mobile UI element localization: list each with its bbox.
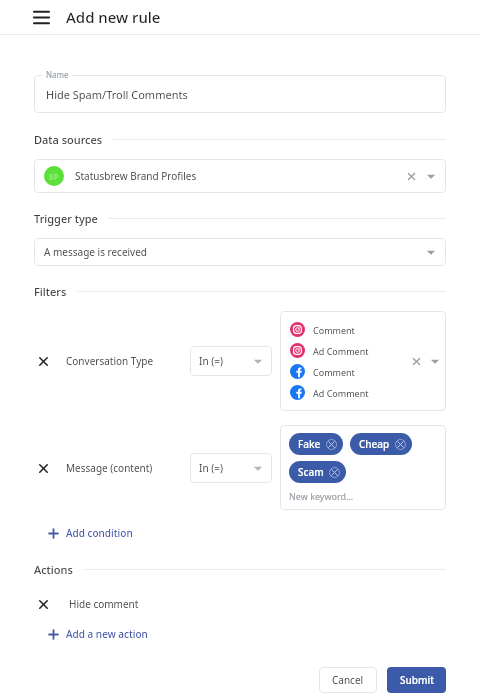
staticText: Hide Spam/Troll Comments (46, 87, 188, 102)
staticText: Data sources (34, 132, 103, 147)
staticText: Message (content) (66, 461, 153, 475)
staticText: Add a new action (66, 627, 148, 641)
button[interactable]: Add condition (34, 524, 139, 542)
staticText: Trigger type (34, 211, 98, 226)
button[interactable]: Remove filter Conversation Type (34, 352, 52, 370)
staticText: Hide comment (69, 597, 139, 611)
button[interactable]: Menu (30, 6, 52, 28)
button[interactable]: Fake (289, 433, 343, 455)
button[interactable]: SP (34, 159, 446, 193)
button[interactable]: Remove filter Message content (34, 459, 52, 477)
button[interactable]: Clear values (409, 354, 423, 368)
staticText: Add new rule (66, 7, 161, 27)
staticText: Actions (34, 562, 73, 577)
staticText: Cancel (332, 673, 364, 687)
button[interactable]: Cancel (319, 667, 377, 693)
staticText: Ad Comment (313, 387, 369, 399)
button[interactable]: Scam (289, 461, 346, 483)
button[interactable]: Clear data source (404, 169, 418, 183)
staticText: Add condition (66, 526, 133, 540)
staticText: Comment (313, 324, 355, 336)
button[interactable]: A message is received (34, 238, 446, 266)
button[interactable]: Hide Spam/Troll Comments (34, 75, 446, 113)
staticText: Cheap (359, 437, 390, 451)
button[interactable]: Remove action Hide comment (34, 595, 52, 613)
staticText: A message is received (44, 245, 147, 259)
staticText: Submit (400, 673, 434, 687)
button[interactable]: In (=) (190, 453, 272, 483)
staticText: Conversation Type (66, 354, 154, 368)
staticText: Statusbrew Brand Profiles (75, 169, 197, 183)
staticText: Fake (298, 437, 321, 451)
button[interactable]: Fake (280, 425, 446, 510)
button[interactable]: Comment (280, 311, 446, 411)
staticText: SP (49, 171, 59, 182)
staticText: Comment (313, 366, 355, 378)
staticText: Name (46, 69, 69, 80)
staticText: Ad Comment (313, 345, 369, 357)
button[interactable]: Cheap (350, 433, 412, 455)
staticText: New keyword... (289, 490, 354, 502)
staticText: Scam (298, 465, 324, 479)
button[interactable]: In (=) (190, 346, 272, 376)
button[interactable]: Submit (387, 667, 446, 693)
button[interactable]: Add a new action (34, 625, 154, 643)
staticText: Filters (34, 284, 67, 299)
staticText: In (=) (199, 354, 223, 368)
staticText: In (=) (199, 461, 223, 475)
